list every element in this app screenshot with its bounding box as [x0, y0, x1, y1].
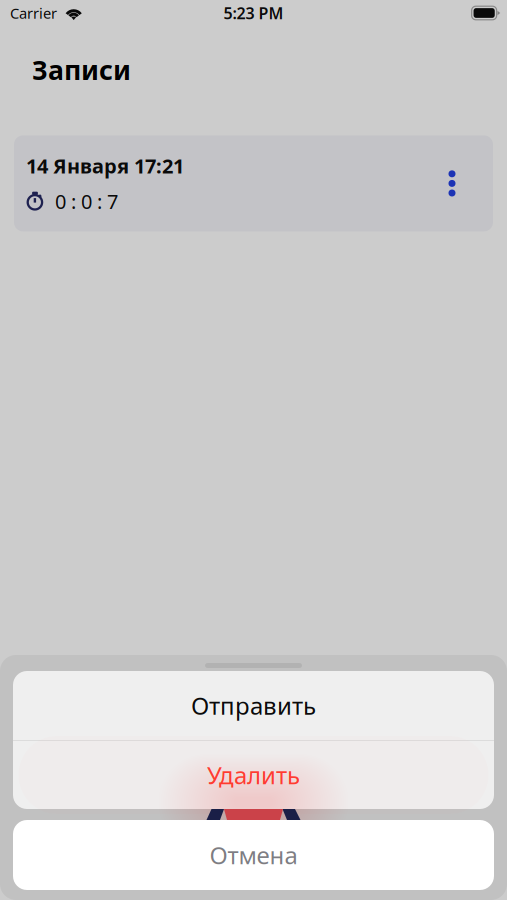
button[interactable]: More options	[430, 157, 474, 209]
button[interactable]: Удалить	[13, 741, 494, 809]
staticText: Отправить	[191, 690, 316, 721]
staticText: Отмена	[209, 839, 297, 871]
staticText: Записи	[32, 52, 131, 87]
staticText: Carrier	[10, 3, 57, 23]
button[interactable]: Отмена	[13, 820, 494, 890]
staticText: Удалить	[207, 759, 300, 791]
staticText: 0 : 0 : 7	[55, 188, 118, 214]
staticText: 5:23 PM	[223, 2, 283, 24]
button[interactable]: Отправить	[13, 671, 494, 740]
staticText: 14 Января 17:21	[26, 152, 184, 179]
